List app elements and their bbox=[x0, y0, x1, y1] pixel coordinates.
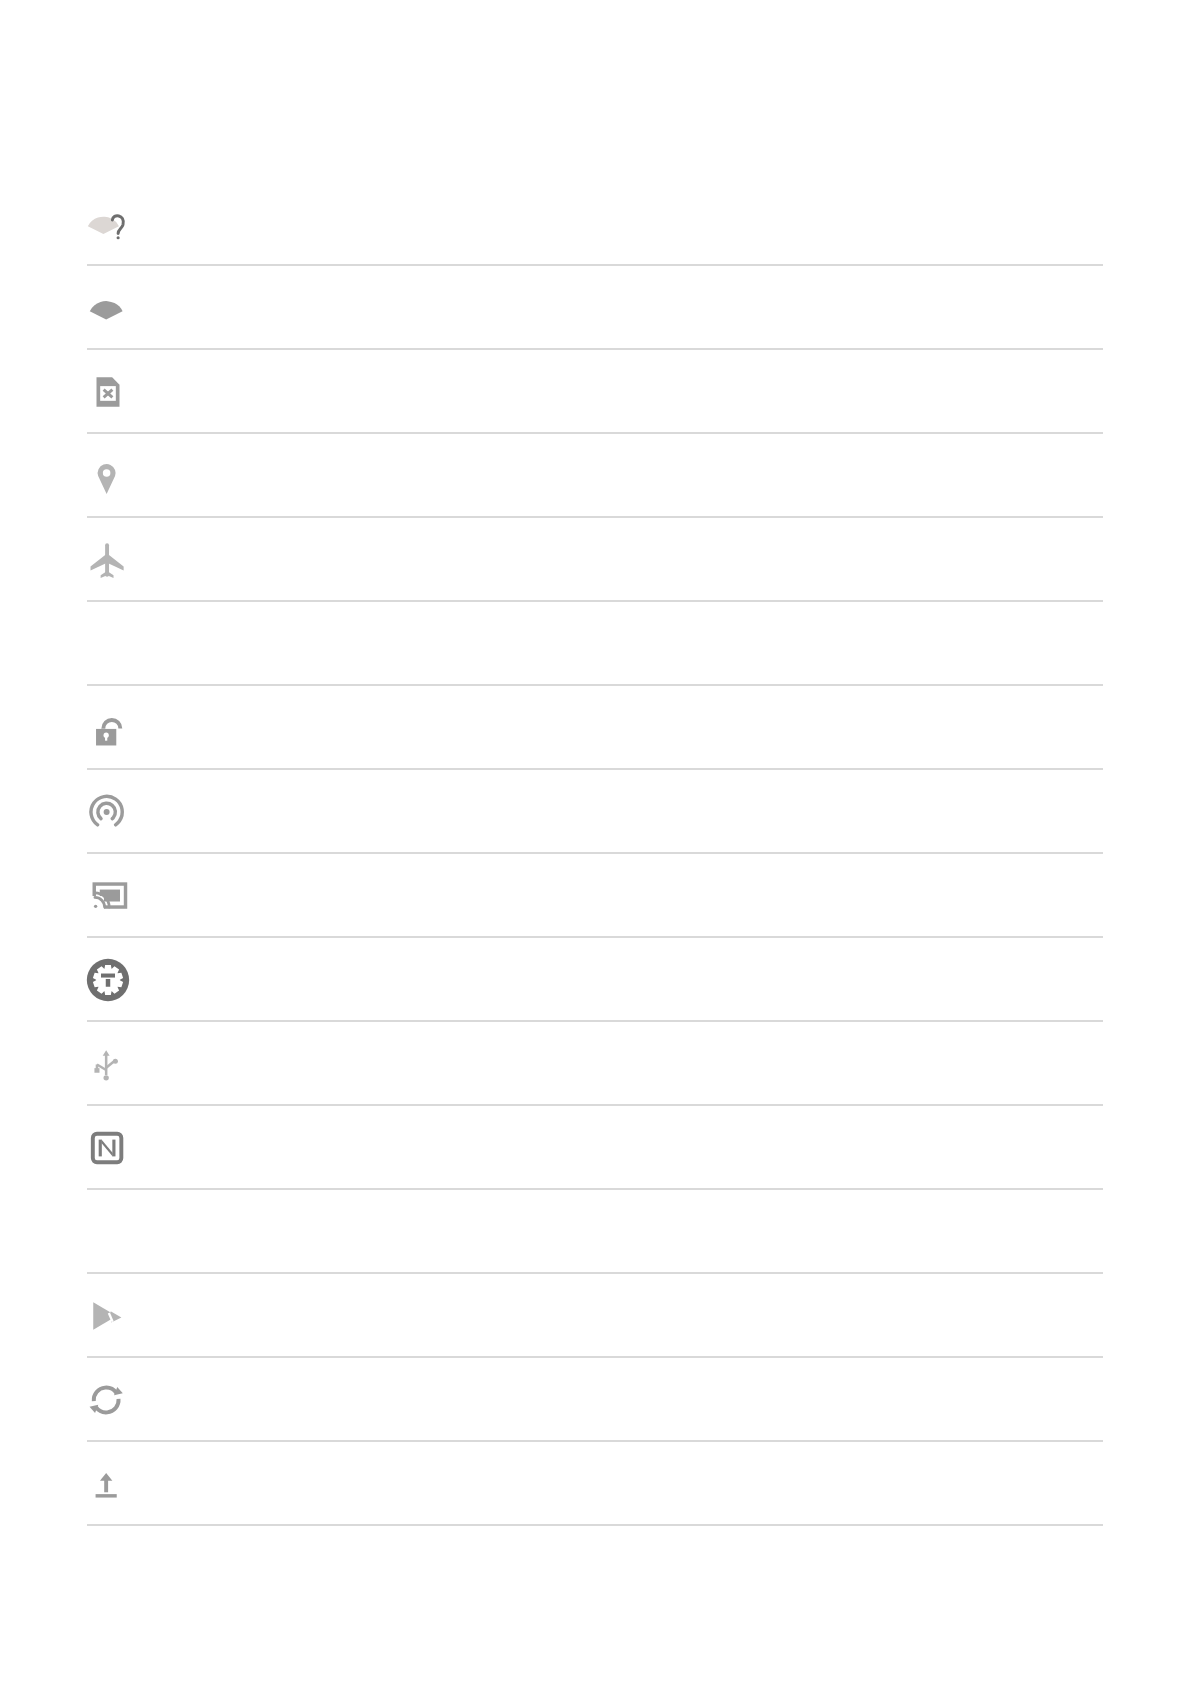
button[interactable]: Google Play bbox=[0, 1274, 1191, 1358]
button[interactable]: Upload bbox=[0, 1442, 1191, 1526]
button[interactable]: Sync bbox=[0, 1358, 1191, 1442]
button[interactable]: Airplane mode bbox=[0, 518, 1191, 602]
button[interactable]: Location bbox=[0, 434, 1191, 518]
button[interactable]: Developer options bbox=[0, 938, 1191, 1022]
button[interactable]: Cast screen bbox=[0, 854, 1191, 938]
button[interactable]: Hotspot bbox=[0, 770, 1191, 854]
button[interactable]: Wi-Fi no internet bbox=[0, 182, 1191, 266]
button[interactable]: Wi-Fi connected bbox=[0, 266, 1191, 350]
button[interactable]: NFC enabled bbox=[0, 1106, 1191, 1190]
button[interactable]: Screen unlocked bbox=[0, 686, 1191, 770]
button[interactable]: USB connected bbox=[0, 1022, 1191, 1106]
button[interactable]: No SIM card bbox=[0, 350, 1191, 434]
